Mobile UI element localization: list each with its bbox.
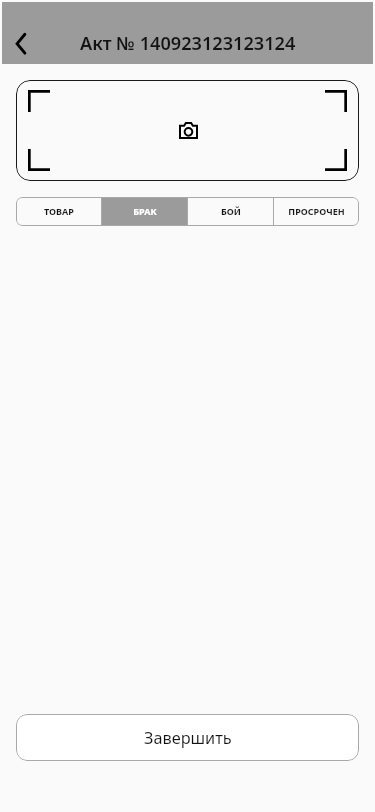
button[interactable]: Back	[4, 26, 38, 60]
button[interactable]: ТОВАР	[16, 197, 101, 226]
button[interactable]: Take photo	[16, 80, 359, 181]
staticText: БОЙ	[221, 205, 241, 217]
staticText: БРАК	[133, 205, 157, 217]
staticText: Акт № 140923123123124	[80, 31, 296, 56]
button[interactable]: БРАК	[102, 197, 187, 226]
staticText: ТОВАР	[44, 205, 74, 217]
button[interactable]: Завершить	[16, 714, 359, 761]
button[interactable]: ПРОСРОЧЕН	[274, 197, 359, 226]
button[interactable]: БОЙ	[188, 197, 273, 226]
staticText: Завершить	[144, 727, 232, 749]
staticText: ПРОСРОЧЕН	[288, 205, 345, 217]
